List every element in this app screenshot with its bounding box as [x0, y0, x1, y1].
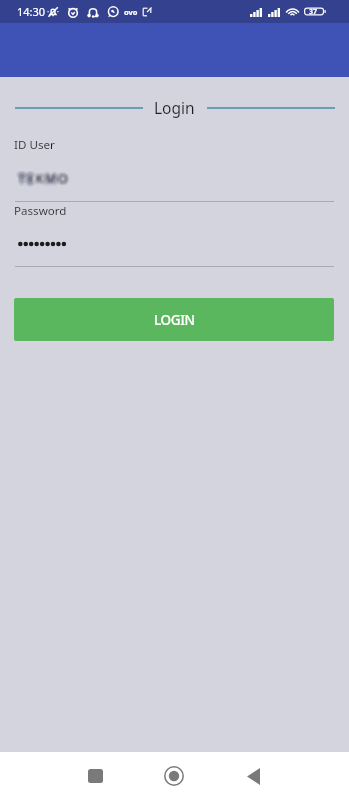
staticText: TEKMO — [16, 168, 68, 185]
staticText: TEKMO — [16, 170, 68, 187]
staticText: TEKMO — [19, 173, 71, 190]
staticText: TEKMO — [19, 172, 71, 189]
staticText: TEKMO — [19, 172, 71, 189]
staticText: TEKMO — [19, 174, 71, 191]
button[interactable]: Back — [229, 752, 277, 800]
staticText: TEKMO — [15, 172, 67, 189]
staticText: TEKMO — [17, 170, 69, 187]
staticText: TEKMO — [20, 171, 72, 188]
staticText: TEKMO — [19, 168, 71, 185]
staticText: TEKMO — [20, 173, 72, 190]
button[interactable]: LOGIN — [14, 298, 334, 341]
staticText: TEKMO — [18, 173, 70, 190]
staticText: TEKMO — [17, 169, 69, 186]
staticText: TEKMO — [20, 169, 72, 186]
staticText: TEKMO — [21, 172, 73, 189]
staticText: TEKMO — [19, 174, 71, 191]
staticText: TEKMO — [17, 173, 69, 190]
staticText: TEKMO — [20, 168, 72, 185]
staticText: TEKMO — [17, 169, 69, 186]
staticText: TEKMO — [17, 171, 69, 188]
staticText: TEKMO — [21, 173, 73, 190]
staticText: TEKMO — [17, 174, 69, 191]
staticText: TEKMO — [20, 168, 72, 185]
staticText: TEKMO — [19, 168, 71, 185]
staticText: TEKMO — [14, 170, 66, 187]
staticText: TEKMO — [17, 170, 69, 187]
staticText: TEKMO — [21, 172, 73, 189]
staticText: TEKMO — [19, 173, 71, 190]
staticText: TEKMO — [15, 168, 67, 185]
staticText: TEKMO — [15, 169, 67, 186]
staticText: TEKMO — [18, 171, 70, 188]
staticText: TEKMO — [19, 168, 71, 185]
staticText: TEKMO — [21, 171, 73, 188]
staticText: TEKMO — [20, 169, 72, 186]
staticText: TEKMO — [17, 168, 69, 185]
staticText: TEKMO — [20, 170, 72, 187]
staticText: TEKMO — [15, 169, 67, 186]
staticText: TEKMO — [19, 167, 71, 184]
staticText: TEKMO — [22, 171, 74, 188]
staticText: TEKMO — [20, 168, 72, 185]
staticText: TEKMO — [17, 171, 69, 188]
staticText: TEKMO — [17, 168, 69, 185]
staticText: TEKMO — [20, 170, 72, 187]
staticText: TEKMO — [17, 170, 69, 187]
staticText: TEKMO — [15, 169, 67, 186]
staticText: TEKMO — [22, 172, 74, 189]
staticText: TEKMO — [21, 171, 73, 188]
staticText: TEKMO — [20, 171, 72, 188]
staticText: TEKMO — [19, 167, 71, 184]
staticText: TEKMO — [20, 170, 72, 187]
staticText: TEKMO — [18, 170, 70, 187]
staticText: TEKMO — [16, 171, 68, 188]
staticText: TEKMO — [21, 169, 73, 186]
staticText: TEKMO — [20, 167, 72, 184]
staticText: TEKMO — [21, 168, 73, 185]
staticText: TEKMO — [19, 169, 71, 186]
staticText: TEKMO — [18, 166, 70, 183]
staticText: TEKMO — [19, 169, 71, 186]
staticText: TEKMO — [15, 172, 67, 189]
staticText: TEKMO — [19, 169, 71, 186]
staticText: TEKMO — [21, 170, 73, 187]
staticText: TEKMO — [16, 171, 68, 188]
button[interactable]: Recent apps — [71, 752, 119, 800]
staticText: TEKMO — [16, 167, 68, 184]
staticText: TEKMO — [17, 168, 69, 185]
staticText: TEKMO — [17, 172, 69, 189]
staticText: TEKMO — [15, 168, 67, 185]
staticText: TEKMO — [18, 171, 70, 188]
staticText: TEKMO — [19, 170, 71, 187]
staticText: TEKMO — [21, 173, 73, 190]
staticText: TEKMO — [21, 170, 73, 187]
staticText: TEKMO — [18, 170, 70, 187]
staticText: TEKMO — [15, 172, 67, 189]
staticText: TEKMO — [19, 174, 71, 191]
button[interactable]: Home — [150, 752, 198, 800]
staticText: TEKMO — [21, 173, 73, 190]
staticText: TEKMO — [20, 173, 72, 190]
staticText: TEKMO — [15, 173, 67, 190]
staticText: TEKMO — [16, 167, 68, 184]
staticText: TEKMO — [20, 170, 72, 187]
staticText: TEKMO — [16, 168, 68, 185]
staticText: TEKMO — [18, 168, 70, 185]
staticText: TEKMO — [17, 167, 69, 184]
staticText: TEKMO — [17, 167, 69, 184]
staticText: TEKMO — [19, 172, 71, 189]
staticText: TEKMO — [18, 172, 70, 189]
staticText: TEKMO — [20, 167, 72, 184]
staticText: TEKMO — [22, 172, 74, 189]
staticText: TEKMO — [19, 171, 71, 188]
staticText: TEKMO — [16, 170, 68, 187]
staticText: TEKMO — [19, 171, 71, 188]
staticText: TEKMO — [18, 172, 70, 189]
staticText: TEKMO — [15, 168, 67, 185]
staticText: TEKMO — [16, 167, 68, 184]
staticText: TEKMO — [22, 171, 74, 188]
staticText: TEKMO — [16, 174, 68, 191]
staticText: TEKMO — [21, 169, 73, 186]
staticText: TEKMO — [18, 174, 70, 191]
